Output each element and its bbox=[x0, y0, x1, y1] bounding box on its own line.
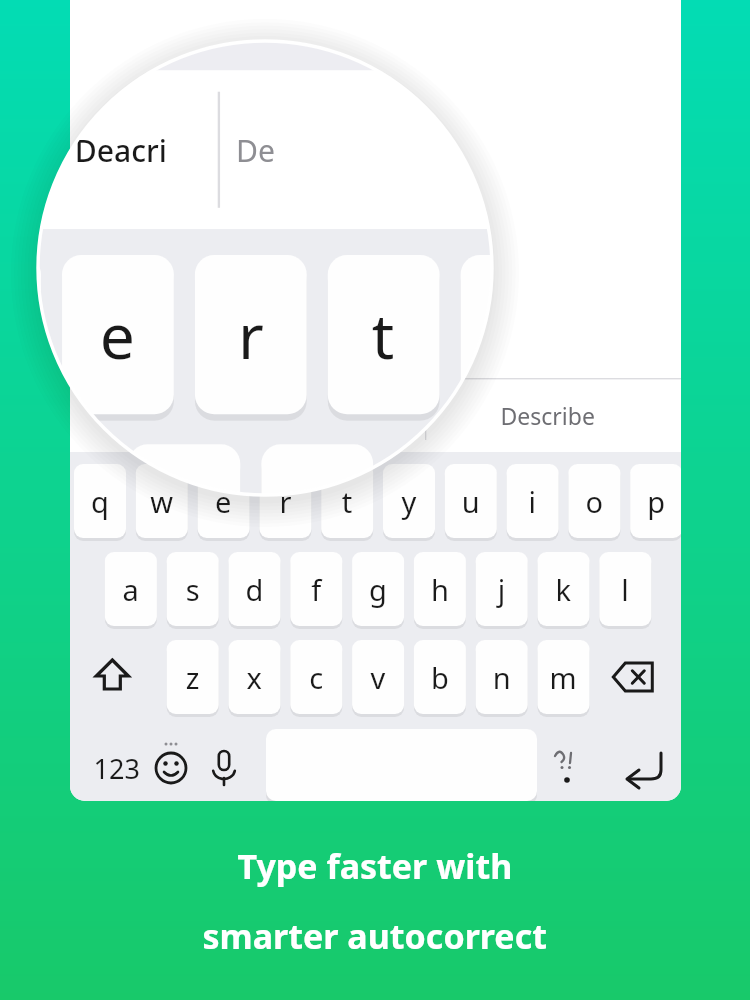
button[interactable]: Keyboard autocorrect preview bbox=[0, 0, 750, 1000]
